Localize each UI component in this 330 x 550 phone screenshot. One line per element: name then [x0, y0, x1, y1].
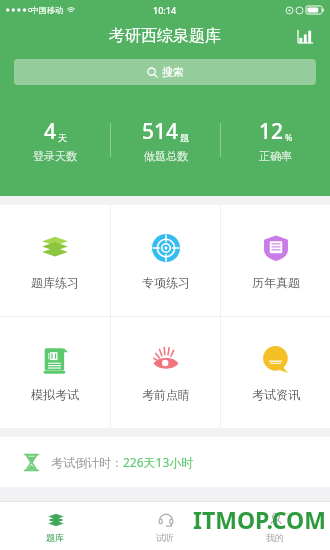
staticText: 天 [58, 132, 67, 143]
button[interactable]: 考试资讯 [221, 317, 330, 428]
button[interactable]: 统计 [290, 21, 320, 51]
staticText: 中国移动 [31, 5, 63, 15]
staticText: 考试倒计时： [51, 455, 123, 470]
staticText: 登录天数 [33, 149, 77, 163]
staticText: 10:14 [153, 4, 177, 16]
button[interactable]: 12 [221, 117, 330, 163]
button[interactable]: 题库 [0, 502, 110, 550]
button[interactable]: 考前点睛 [111, 317, 220, 428]
button[interactable]: 试听 [110, 502, 220, 550]
button[interactable]: 考试倒计时： [0, 437, 330, 487]
button[interactable]: 514 [111, 117, 220, 163]
staticText: 题库 [46, 532, 64, 543]
staticText: 226天13小时 [123, 454, 194, 470]
button[interactable]: 我的 [220, 502, 330, 550]
staticText: 专项练习 [142, 275, 190, 290]
staticText: 4 [44, 117, 57, 146]
staticText: % [285, 131, 293, 143]
staticText: 正确率 [259, 149, 292, 163]
staticText: 题库练习 [31, 275, 79, 290]
button[interactable]: 专项练习 [111, 205, 220, 316]
staticText: 12 [259, 117, 284, 146]
button[interactable]: 4 [0, 117, 110, 163]
staticText: 搜索 [162, 65, 184, 79]
staticText: 我的 [266, 532, 284, 543]
staticText: 考前点睛 [142, 387, 190, 402]
staticText: 题 [180, 132, 189, 143]
staticText: 做题总数 [144, 149, 188, 163]
staticText: 514 [142, 117, 179, 146]
staticText: 考研西综泉题库 [109, 26, 221, 46]
staticText: 模拟考试 [31, 387, 79, 402]
staticText: 考试资讯 [252, 387, 300, 402]
button[interactable]: 历年真题 [221, 205, 330, 316]
staticText: 历年真题 [252, 275, 300, 290]
button[interactable]: 题库练习 [0, 205, 110, 316]
button[interactable]: 搜索 [14, 59, 316, 85]
staticText: ITMOP.COM [193, 504, 326, 535]
staticText: 试听 [156, 532, 174, 543]
button[interactable]: 模拟考试 [0, 317, 110, 428]
